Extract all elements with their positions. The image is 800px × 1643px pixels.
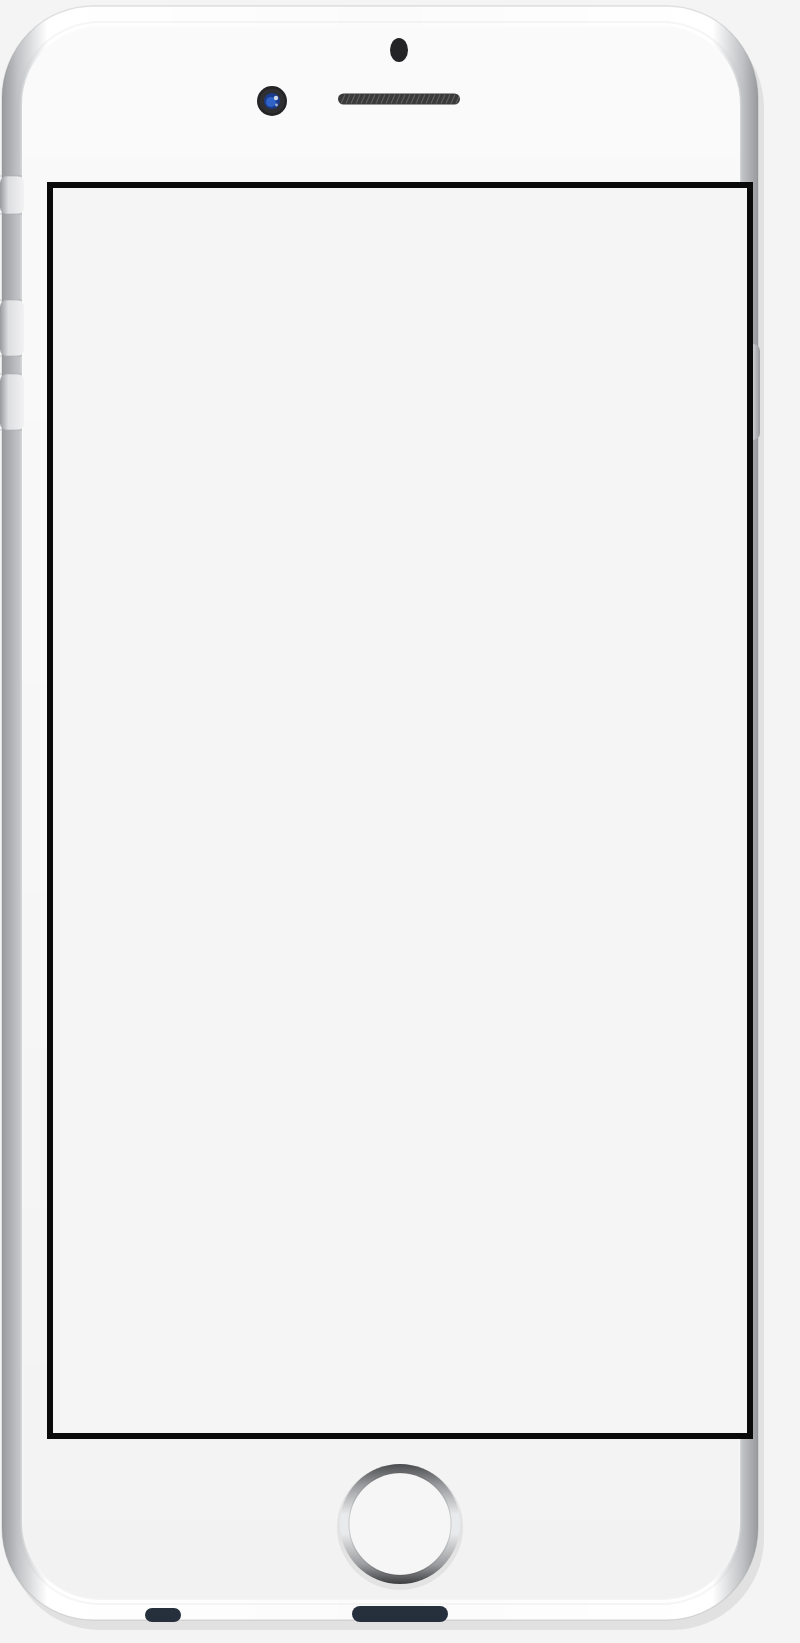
other: Silver iPhone device frame with blank sc… [0,0,800,1643]
